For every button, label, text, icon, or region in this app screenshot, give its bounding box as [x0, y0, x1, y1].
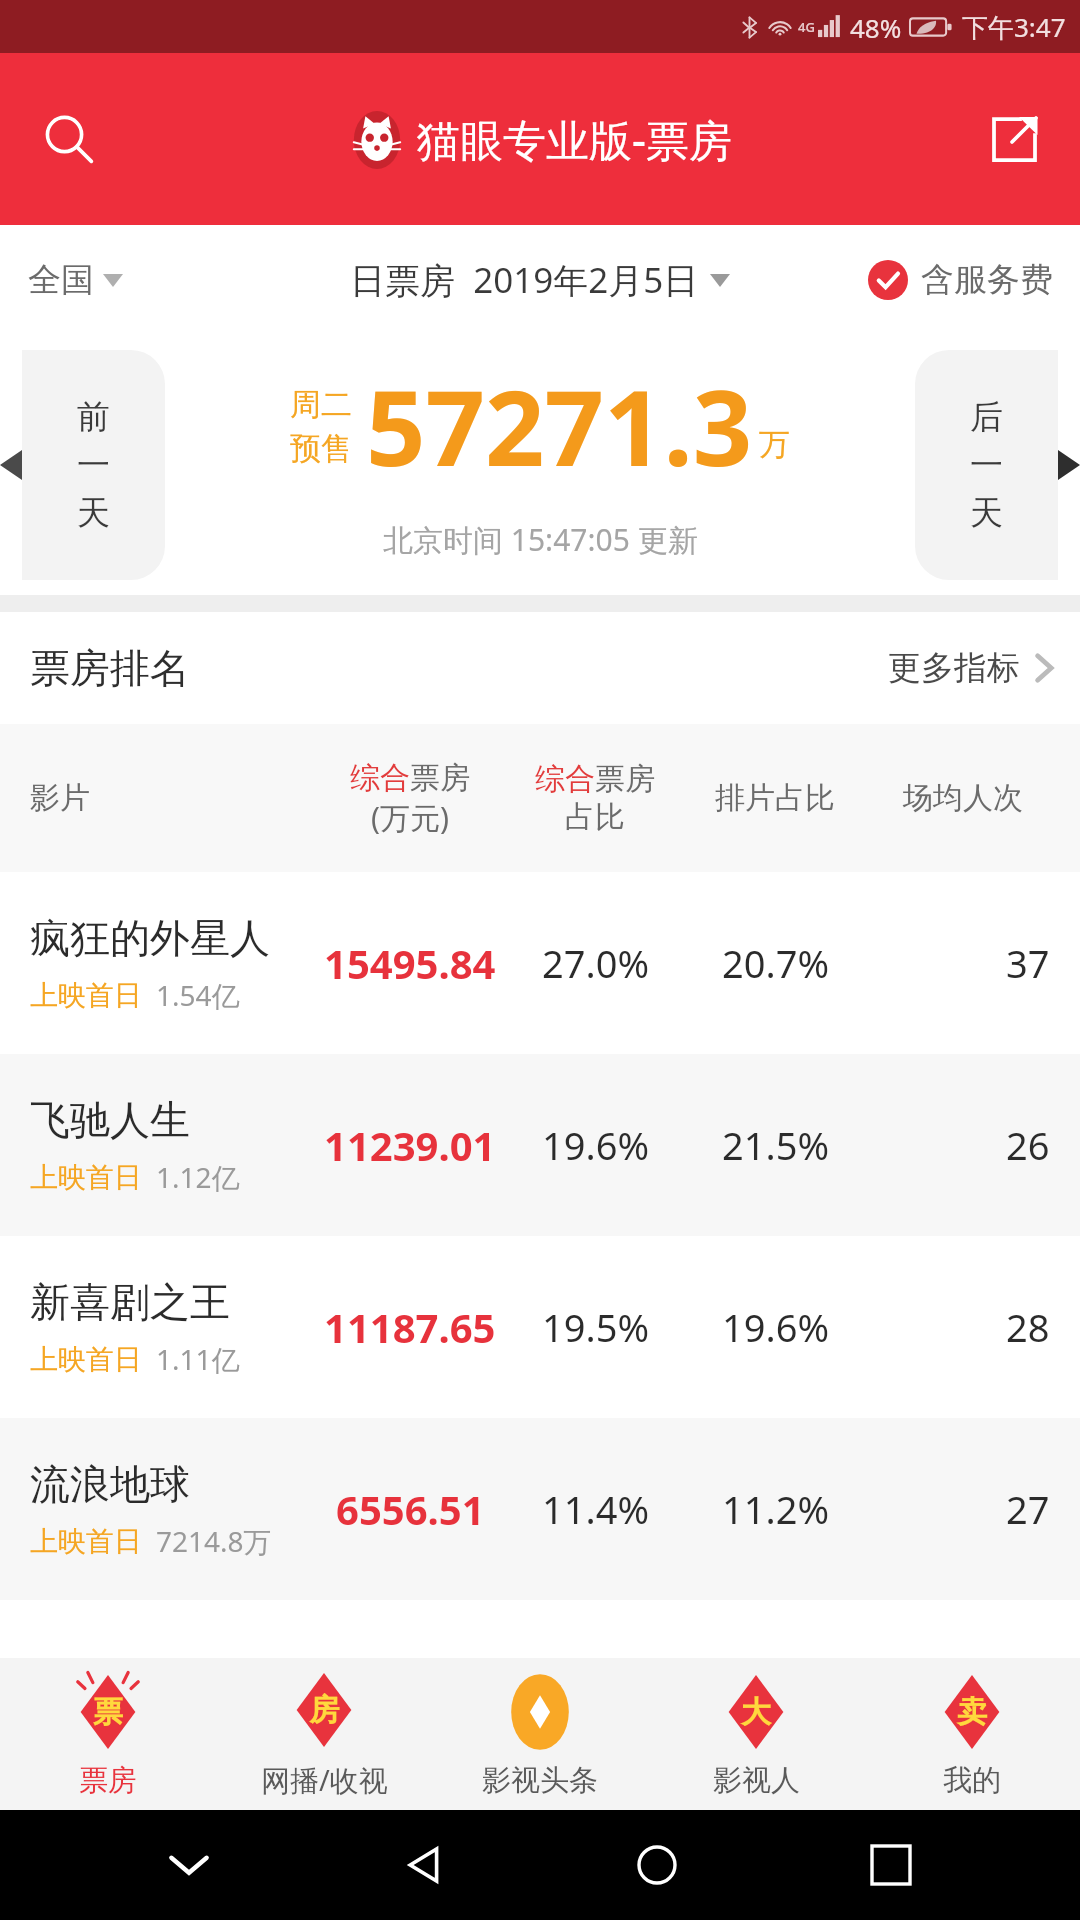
- staticText: 票房: [595, 760, 655, 798]
- staticText: 1.12亿: [156, 1158, 240, 1196]
- staticText: 下午3:47: [962, 9, 1066, 45]
- button[interactable]: 飞驰人生: [0, 1054, 1080, 1236]
- staticText: 新喜剧之王: [30, 1277, 230, 1327]
- staticText: 影视人: [713, 1762, 800, 1799]
- button[interactable]: 全国: [28, 259, 123, 301]
- staticText: 27.0%: [542, 937, 649, 989]
- staticText: 综合: [535, 760, 595, 798]
- staticText: 票房: [410, 759, 470, 797]
- staticText: 疯狂的外星人: [30, 913, 270, 963]
- staticText: 前 一 天: [77, 396, 110, 534]
- button[interactable]: 后 一 天: [915, 350, 1080, 580]
- button[interactable]: 新喜剧之王: [0, 1236, 1080, 1418]
- button[interactable]: 最近任务: [846, 1820, 936, 1910]
- staticText: 周二 预售: [290, 385, 352, 468]
- button[interactable]: 疯狂的外星人: [0, 872, 1080, 1054]
- staticText: 票房排名: [30, 643, 190, 693]
- staticText: 票房: [79, 1762, 137, 1799]
- staticText: 全国: [28, 259, 94, 301]
- staticText: 后 一 天: [970, 396, 1003, 534]
- staticText: 票: [93, 1693, 123, 1731]
- staticText: 更多指标: [888, 647, 1020, 689]
- staticText: 7214.8万: [156, 1522, 272, 1560]
- staticText: 卖: [957, 1693, 987, 1731]
- staticText: 11239.01: [324, 1118, 496, 1172]
- staticText: 北京时间 15:47:05 更新: [383, 519, 698, 560]
- button[interactable]: 票: [0, 1658, 216, 1810]
- staticText: 37: [1006, 937, 1050, 989]
- button[interactable]: 主屏幕: [612, 1820, 702, 1910]
- button[interactable]: 前 一 天: [0, 350, 165, 580]
- staticText: 26: [1006, 1119, 1050, 1171]
- staticText: 1.54亿: [156, 976, 240, 1014]
- staticText: 影片: [30, 779, 90, 817]
- staticText: 27: [1006, 1483, 1050, 1535]
- staticText: 我的: [943, 1762, 1001, 1799]
- staticText: 21.5%: [722, 1119, 829, 1171]
- staticText: 综合: [350, 759, 410, 797]
- staticText: 上映首日: [30, 1160, 142, 1195]
- staticText: 流浪地球: [30, 1459, 190, 1509]
- staticText: 占比: [565, 798, 625, 836]
- staticText: 1.11亿: [156, 1340, 240, 1378]
- staticText: 场均人次: [903, 779, 1023, 817]
- button[interactable]: 分享: [978, 103, 1050, 175]
- staticText: 28: [1006, 1301, 1050, 1353]
- button[interactable]: 影视头条: [432, 1658, 648, 1810]
- staticText: 猫眼专业版-票房: [417, 110, 732, 169]
- staticText: 11187.65: [324, 1300, 496, 1354]
- staticText: 飞驰人生: [30, 1095, 190, 1145]
- staticText: 上映首日: [30, 1342, 142, 1377]
- staticText: 房: [309, 1691, 339, 1729]
- staticText: 15495.84: [324, 936, 496, 990]
- button[interactable]: 房: [216, 1658, 432, 1810]
- staticText: 网播/收视: [261, 1760, 388, 1800]
- staticText: 排片占比: [715, 779, 835, 817]
- button[interactable]: 日票房 2019年2月5日: [350, 256, 730, 304]
- staticText: 19.6%: [542, 1119, 649, 1171]
- staticText: 20.7%: [722, 937, 829, 989]
- staticText: 6556.51: [336, 1482, 485, 1536]
- staticText: 19.6%: [722, 1301, 829, 1353]
- button[interactable]: 流浪地球: [0, 1418, 1080, 1600]
- staticText: 4G: [798, 18, 815, 36]
- staticText: 影视头条: [482, 1762, 598, 1799]
- button[interactable]: 收起: [144, 1820, 234, 1910]
- staticText: 11.2%: [722, 1483, 829, 1535]
- staticText: (万元): [371, 797, 449, 838]
- staticText: 万: [759, 425, 790, 464]
- button[interactable]: 大: [648, 1658, 864, 1810]
- staticText: 上映首日: [30, 978, 142, 1013]
- button[interactable]: 搜索: [32, 102, 106, 176]
- staticText: 11.4%: [542, 1483, 649, 1535]
- staticText: 19.5%: [542, 1301, 649, 1353]
- button[interactable]: 返回: [378, 1820, 468, 1910]
- button[interactable]: 更多指标: [888, 647, 1054, 689]
- button[interactable]: 卖: [864, 1658, 1080, 1810]
- staticText: 57271.3: [366, 355, 753, 497]
- staticText: 日票房 2019年2月5日: [350, 256, 699, 304]
- staticText: 上映首日: [30, 1524, 142, 1559]
- staticText: 大: [741, 1693, 771, 1731]
- staticText: 48%: [850, 10, 902, 45]
- button[interactable]: 含服务费: [868, 259, 1053, 301]
- staticText: 含服务费: [921, 259, 1053, 301]
